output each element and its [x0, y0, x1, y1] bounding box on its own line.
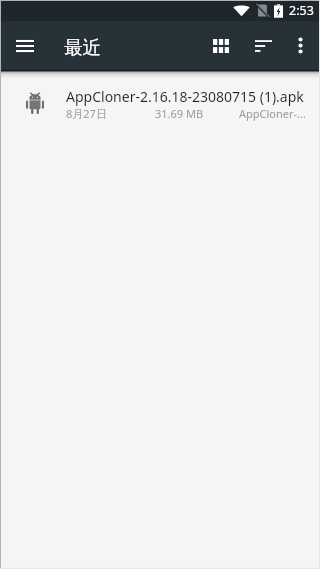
staticText: AppCloner-...: [239, 106, 306, 121]
staticText: 8月27日: [66, 106, 107, 121]
button[interactable]: Sort: [241, 21, 286, 70]
staticText: 2:53: [289, 2, 314, 19]
button[interactable]: Open navigation drawer: [1, 21, 48, 70]
button[interactable]: More options: [280, 21, 320, 70]
staticText: AppCloner-2.16.18-23080715 (1).apk: [66, 87, 304, 106]
staticText: 31.69 MB: [155, 106, 204, 121]
button[interactable]: Grid view: [198, 21, 243, 70]
staticText: 最近: [64, 36, 101, 59]
button[interactable]: AppCloner-2.16.18-23080715 (1).apk: [0, 70, 320, 137]
